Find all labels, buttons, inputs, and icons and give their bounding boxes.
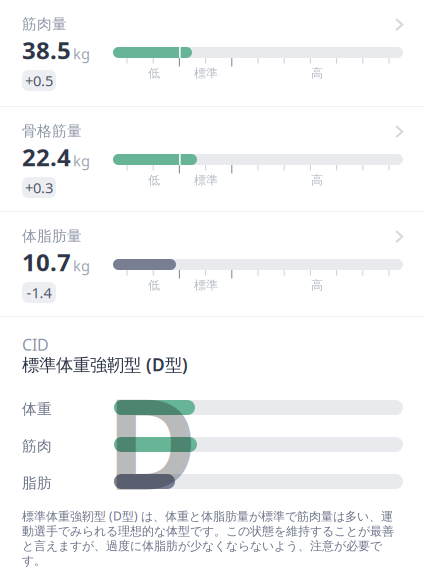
staticText: 体重 (22, 400, 52, 418)
staticText: kg (73, 44, 90, 63)
staticText: 高 (311, 66, 323, 81)
staticText: 38.5 (22, 34, 71, 66)
staticText: +0.3 (25, 178, 53, 197)
staticText: 低 (148, 66, 160, 81)
staticText: kg (73, 151, 90, 170)
staticText: 標準体重強靭型 (D型) (22, 353, 188, 376)
staticText: 筋肉 (22, 437, 52, 455)
staticText: 筋肉量 (22, 15, 67, 33)
staticText: 高 (311, 173, 323, 188)
staticText: 標準 (194, 173, 218, 188)
staticText: 22.4 (22, 141, 71, 173)
staticText: D (106, 358, 198, 524)
staticText: 体脂肪量 (22, 227, 82, 245)
staticText: CID (22, 334, 49, 355)
button[interactable]: 筋肉量 (0, 0, 425, 105)
staticText: 10.7 (22, 246, 71, 278)
staticText: +0.5 (25, 71, 53, 90)
staticText: 高 (311, 278, 323, 293)
staticText: 標準 (194, 278, 218, 293)
staticText: 低 (148, 278, 160, 293)
staticText: 脂肪 (22, 474, 52, 492)
staticText: 標準体重強靭型 (D型) は、体重と体脂肪量が標準で筋肉量は多い、運動選手でみら… (22, 508, 394, 568)
button[interactable]: 体脂肪量 (0, 212, 425, 317)
staticText: 低 (148, 173, 160, 188)
staticText: -1.4 (26, 283, 51, 302)
staticText: 骨格筋量 (22, 122, 82, 140)
button[interactable]: 骨格筋量 (0, 107, 425, 212)
staticText: 標準 (194, 66, 218, 81)
staticText: kg (73, 256, 90, 275)
